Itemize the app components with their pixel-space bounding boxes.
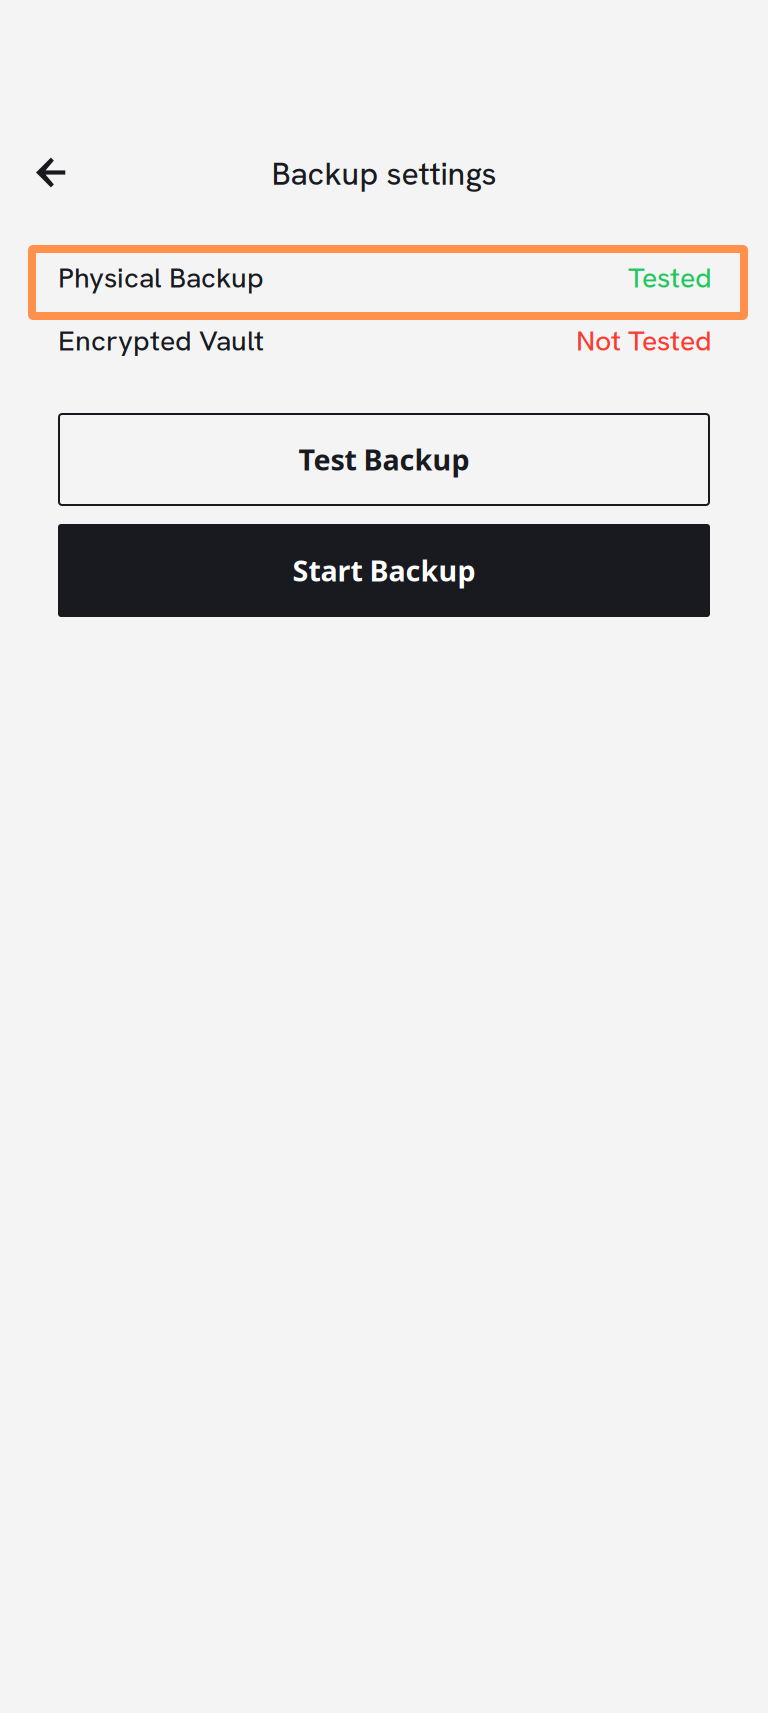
staticText: Not Tested [576,322,712,359]
button[interactable]: Start Backup [58,524,710,617]
staticText: Test Backup [298,440,469,479]
staticText: Start Backup [292,551,475,590]
button[interactable]: Test Backup [58,413,710,506]
staticText: Backup settings [271,153,496,194]
button[interactable]: Back [0,146,83,201]
staticText: Tested [628,259,712,296]
button[interactable]: Encrypted Vault [0,309,768,372]
button[interactable]: Physical Backup [0,246,768,309]
staticText: Encrypted Vault [58,322,264,359]
staticText: Physical Backup [58,259,264,296]
